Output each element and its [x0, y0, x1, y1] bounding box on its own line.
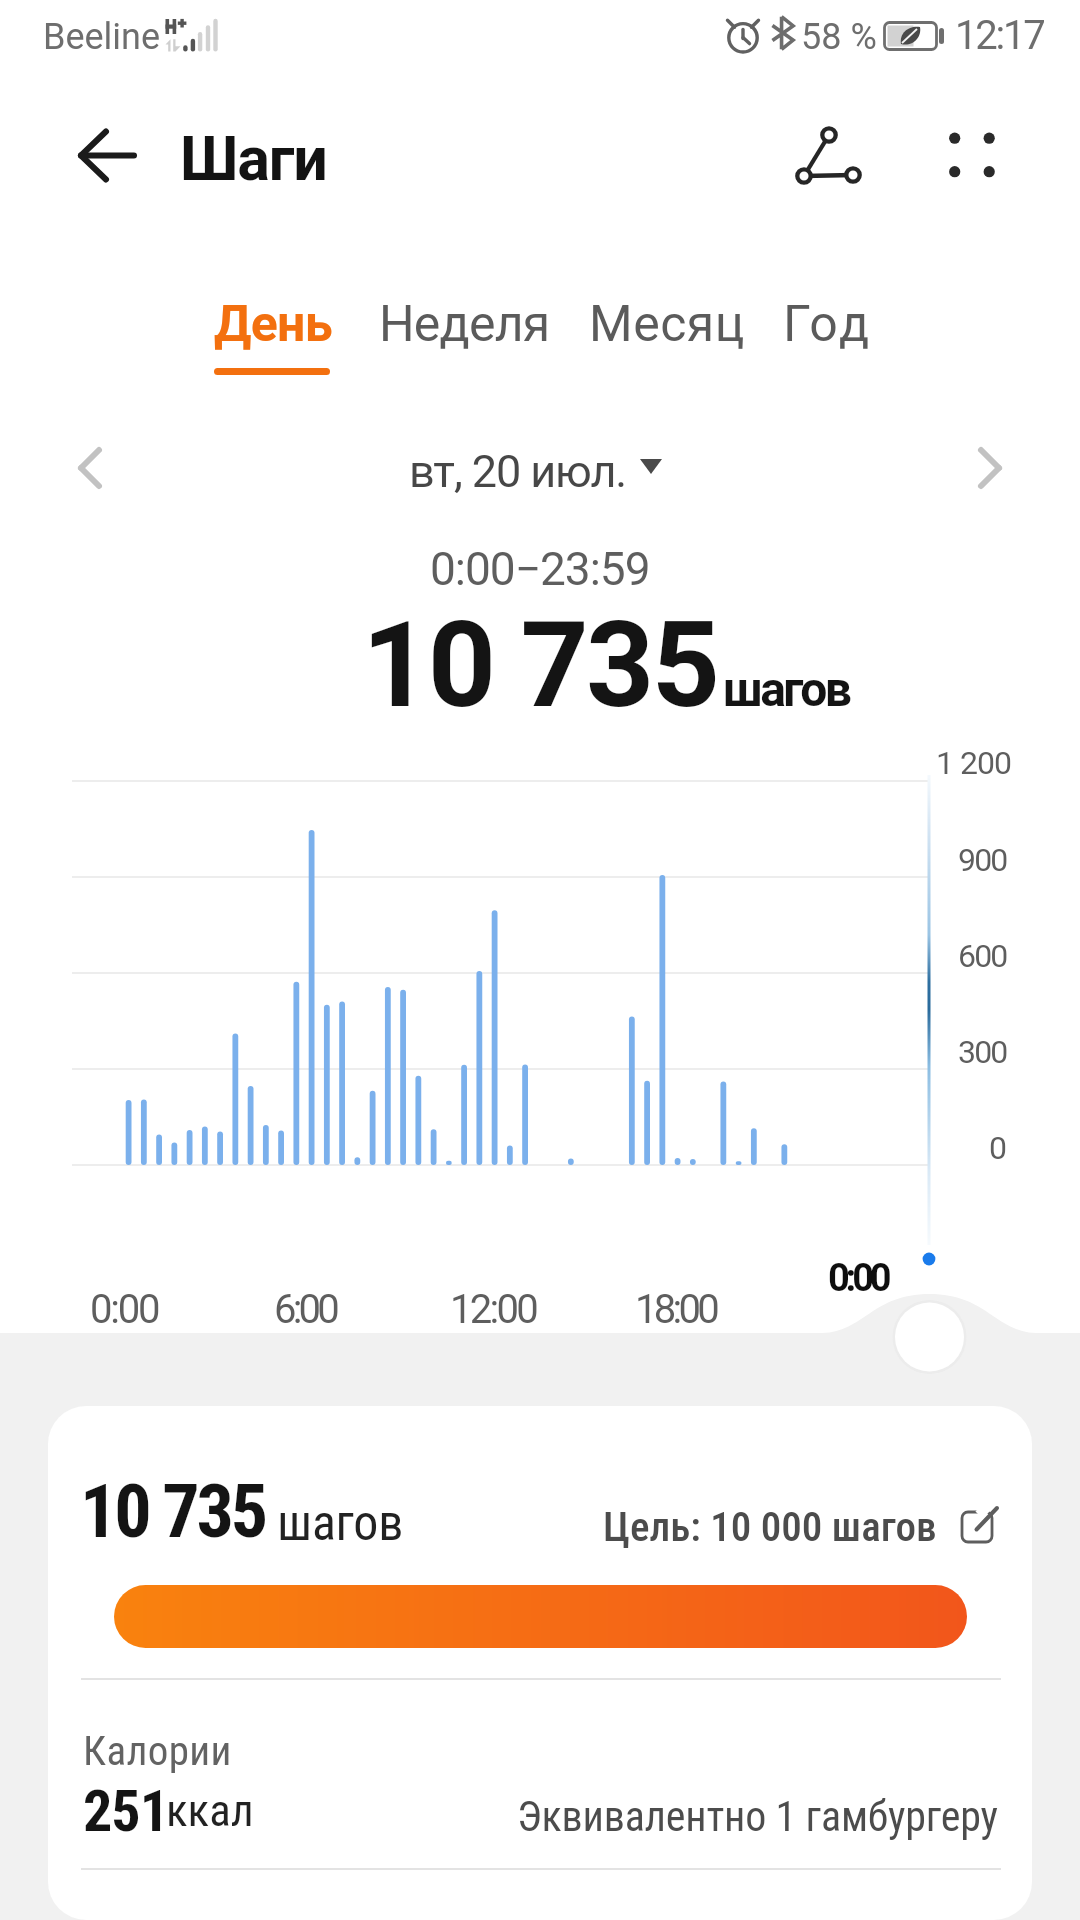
staticText: Месяц — [589, 295, 745, 354]
button[interactable]: Поделиться — [778, 110, 872, 204]
staticText: 251 — [83, 1777, 169, 1845]
staticText: 900 — [958, 841, 1007, 879]
staticText: 58 % — [801, 16, 877, 58]
staticText: Год — [783, 295, 873, 354]
button[interactable]: Изменить цель — [953, 1498, 1009, 1554]
staticText: 12:17 — [955, 12, 1044, 59]
staticText: Эквивалентно 1 гамбургеру — [517, 1792, 998, 1841]
button[interactable]: Назад — [68, 116, 146, 194]
button[interactable]: День — [196, 290, 348, 390]
staticText: шагов — [277, 1494, 404, 1553]
staticText: Неделя — [379, 295, 550, 354]
button[interactable]: Ещё — [928, 112, 1018, 202]
staticText: Калории — [83, 1727, 232, 1775]
staticText: 18:00 — [635, 1286, 717, 1333]
staticText: 10 735 — [80, 1468, 266, 1555]
staticText: Beeline — [43, 16, 161, 58]
staticText: 1 200 — [936, 744, 1011, 782]
staticText: шагов — [723, 661, 850, 717]
button[interactable]: Следующий день — [948, 436, 1018, 506]
staticText: вт, 20 июл. — [409, 445, 627, 498]
staticText: 600 — [958, 937, 1007, 975]
button[interactable]: Год — [765, 290, 881, 390]
staticText: 10 735 — [362, 596, 718, 735]
staticText: Шаги — [180, 123, 327, 194]
button[interactable]: Месяц — [571, 290, 754, 390]
button[interactable]: Предыдущий день — [62, 436, 132, 506]
staticText: 0:00 — [90, 1286, 159, 1333]
staticText: Цель: 10 000 шагов — [603, 1503, 937, 1551]
button[interactable]: вт, 20 июл. — [398, 436, 678, 506]
button[interactable]: Неделя — [361, 290, 559, 390]
staticText: 6:00 — [274, 1286, 336, 1333]
staticText: 300 — [958, 1033, 1007, 1071]
staticText: ккал — [166, 1784, 254, 1837]
staticText: 0 — [989, 1129, 1007, 1167]
staticText: День — [214, 295, 332, 354]
staticText: 0:00 — [828, 1256, 888, 1301]
staticText: 0:00−23:59 — [430, 542, 650, 596]
staticText: 12:00 — [450, 1286, 537, 1333]
